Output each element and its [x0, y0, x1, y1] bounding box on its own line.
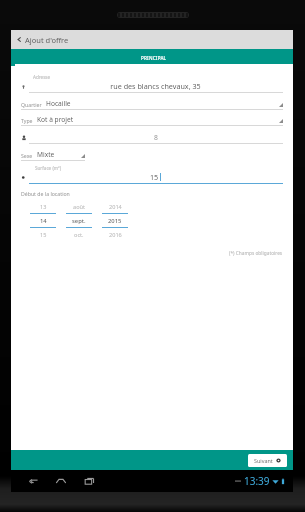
staticText: 2014 — [109, 203, 122, 211]
staticText: Type — [21, 117, 33, 124]
staticText: 15 — [150, 172, 159, 182]
button[interactable]: Adresse — [21, 74, 283, 93]
staticText: 15 — [40, 231, 47, 239]
button[interactable]: Occupants — [21, 133, 283, 144]
button[interactable]: Surface (m²) — [21, 165, 283, 184]
staticText: Kot à projet — [37, 115, 74, 124]
staticText: août — [73, 203, 85, 211]
button[interactable]: 13 — [27, 200, 59, 241]
staticText: 13 — [40, 203, 47, 211]
staticText: Adresse — [33, 74, 51, 80]
staticText: PRINCIPAL — [141, 55, 167, 61]
other: Open Type menu — [279, 119, 283, 123]
button[interactable]: Back — [25, 473, 41, 489]
button[interactable]: août — [63, 200, 95, 241]
staticText: Sexe — [21, 152, 33, 159]
button[interactable]: Sexe — [21, 150, 85, 161]
button[interactable]: Type — [21, 115, 283, 126]
other: Open Sexe menu — [81, 154, 85, 158]
button[interactable]: Home — [53, 473, 69, 489]
staticText: Ajout d'offre — [25, 35, 69, 45]
button[interactable]: PRINCIPAL — [15, 49, 293, 66]
staticText: 2015 — [108, 217, 122, 225]
button[interactable]: Back — [14, 30, 71, 49]
other: Open Quartier menu — [279, 103, 283, 107]
staticText: oct. — [74, 231, 84, 239]
button[interactable]: 2014 — [99, 200, 131, 241]
button[interactable]: Recent apps — [81, 473, 97, 489]
staticText: Surface (m²) — [35, 165, 62, 171]
staticText: Quartier — [21, 101, 42, 108]
button[interactable]: Quartier — [21, 99, 283, 110]
staticText: Début de la location — [21, 190, 70, 197]
other: Back — [16, 36, 23, 43]
staticText: 2016 — [109, 231, 122, 239]
other: Occupants — [21, 135, 27, 141]
staticText: Hocaille — [46, 99, 71, 108]
staticText: rue des blancs chevaux, 35 — [110, 81, 201, 91]
staticText: 13:39 — [244, 474, 270, 488]
staticText: Suivant — [254, 457, 273, 464]
staticText: 14 — [40, 217, 47, 225]
staticText: (*) Champs obligatoires — [229, 250, 283, 257]
staticText: Mixte — [37, 150, 55, 159]
button[interactable]: Suivant — [248, 454, 287, 467]
staticText: sept. — [72, 217, 86, 225]
staticText: 8 — [154, 133, 158, 142]
